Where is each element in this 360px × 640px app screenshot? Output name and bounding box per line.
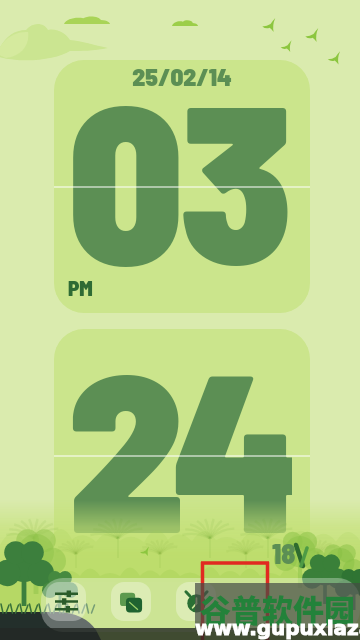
staticText: www.gupuxlazal.com (195, 616, 360, 639)
button[interactable]: Themes (111, 582, 151, 621)
staticText: 25/02/14 (54, 61, 310, 91)
staticText: 03 (68, 60, 289, 293)
button[interactable]: Settings (46, 582, 86, 621)
staticText: 18 (272, 536, 296, 570)
staticText: 谷普软件园 (200, 586, 355, 631)
staticText: 24 (68, 329, 292, 562)
button[interactable]: 24 (54, 329, 310, 582)
button[interactable]: Alarm (176, 582, 216, 621)
button[interactable]: 25/02/14 (54, 60, 310, 313)
staticText: PM (68, 275, 93, 300)
